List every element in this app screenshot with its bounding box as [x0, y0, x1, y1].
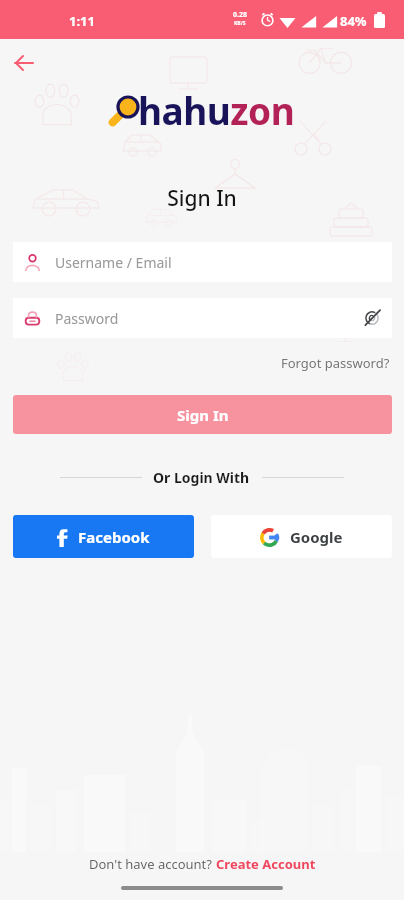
staticText: Password: [55, 309, 119, 328]
button[interactable]: Don't have account?: [0, 855, 404, 873]
staticText: KB/S: [234, 20, 246, 27]
staticText: Sign In: [177, 405, 229, 425]
staticText: Or Login With: [153, 468, 250, 487]
button[interactable]: Back: [5, 44, 43, 82]
button[interactable]: Password: [13, 298, 392, 338]
button[interactable]: Username / Email: [13, 242, 392, 282]
staticText: Google: [290, 527, 343, 547]
staticText: 1:11: [69, 12, 95, 30]
staticText: Create Account: [216, 855, 316, 873]
button[interactable]: Forgot password?: [277, 350, 394, 376]
staticText: Facebook: [78, 527, 150, 547]
staticText: 84%: [340, 12, 367, 30]
button[interactable]: Facebook: [13, 515, 194, 558]
staticText: 0.28: [233, 10, 247, 20]
button[interactable]: Sign In: [13, 395, 392, 434]
staticText: Username / Email: [55, 253, 172, 272]
staticText: Sign In: [0, 184, 404, 213]
staticText: Don't have account?: [89, 855, 216, 873]
staticText: hahuzon: [138, 85, 295, 135]
staticText: Forgot password?: [281, 354, 390, 372]
button[interactable]: Google: [211, 515, 392, 558]
button[interactable]: Show password: [356, 302, 388, 334]
